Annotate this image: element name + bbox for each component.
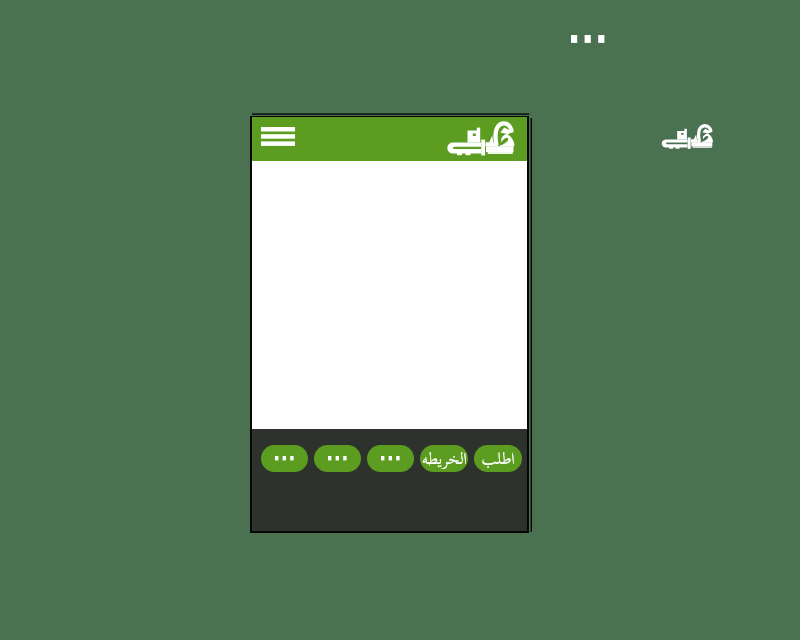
staticText: الخريطه [422, 445, 467, 470]
button[interactable]: More options [567, 31, 609, 47]
button[interactable]: More [261, 445, 308, 472]
button[interactable]: اطلب [474, 445, 522, 472]
button[interactable]: More [367, 445, 414, 472]
staticText: اطلب [481, 445, 515, 470]
button[interactable]: App logo [445, 121, 517, 157]
button[interactable]: Open navigation menu [256, 117, 300, 161]
button[interactable]: الخريطه [420, 445, 468, 472]
button[interactable]: More [314, 445, 361, 472]
